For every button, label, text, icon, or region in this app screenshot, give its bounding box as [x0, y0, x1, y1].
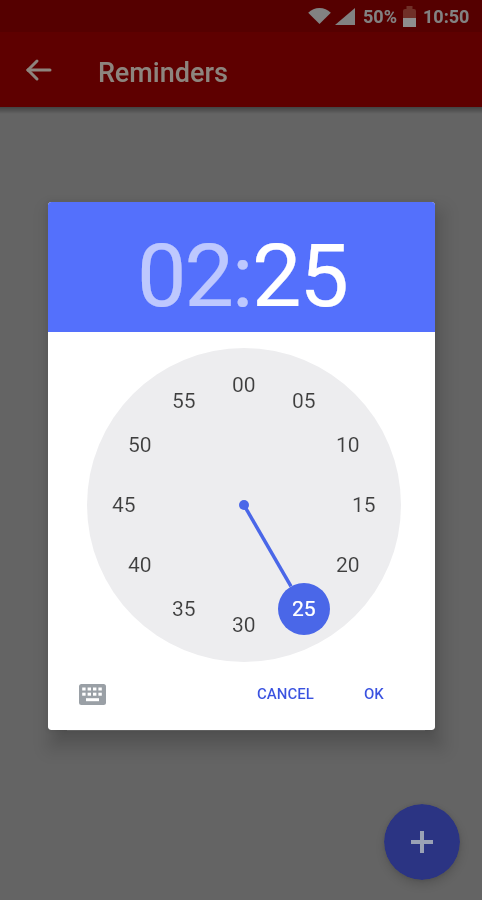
staticText: 40	[128, 553, 152, 578]
staticText: 15	[352, 493, 376, 518]
staticText: 35	[172, 597, 196, 622]
staticText: 50	[128, 433, 152, 458]
button[interactable]: CANCEL	[225, 672, 345, 716]
button[interactable]	[16, 47, 62, 93]
staticText: 10:50	[423, 6, 470, 27]
staticText: 25	[252, 224, 347, 327]
staticText: 05	[292, 389, 316, 414]
button[interactable]	[384, 804, 460, 880]
staticText: 20	[336, 553, 360, 578]
staticText: 00	[232, 373, 256, 398]
staticText: 55	[172, 389, 196, 414]
staticText: OK	[364, 685, 384, 703]
staticText: 25	[292, 597, 316, 622]
staticText: Reminders	[98, 57, 228, 89]
button[interactable]	[68, 672, 116, 716]
staticText: :	[232, 224, 252, 327]
staticText: 30	[232, 613, 256, 638]
staticText: 45	[112, 493, 136, 518]
staticText: CANCEL	[257, 685, 314, 703]
staticText: 02	[137, 224, 232, 327]
button[interactable]: OK	[344, 672, 404, 716]
staticText: 50%	[363, 6, 397, 27]
staticText: 10	[336, 433, 360, 458]
